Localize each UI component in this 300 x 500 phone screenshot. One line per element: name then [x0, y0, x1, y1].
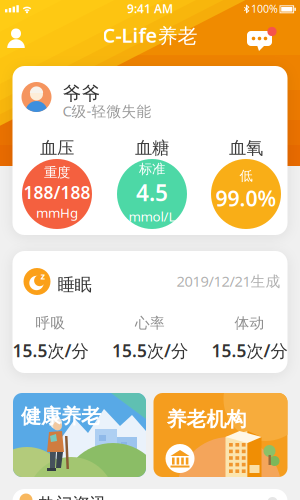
- staticText: 血压: [40, 137, 74, 159]
- staticText: 188/188: [23, 181, 90, 204]
- staticText: C-Life养老: [102, 22, 197, 48]
- staticText: 爷爷: [62, 82, 100, 105]
- staticText: 4.5: [136, 177, 168, 207]
- staticText: 健康养老: [21, 404, 101, 429]
- button[interactable]: 养老机构: [153, 393, 287, 477]
- staticText: 睡眠: [57, 274, 91, 295]
- staticText: 100%: [251, 2, 278, 16]
- staticText: 心率: [135, 314, 165, 332]
- button[interactable]: Messages: [247, 28, 277, 52]
- staticText: 血糖: [135, 137, 169, 159]
- staticText: 标准: [139, 161, 165, 177]
- staticText: 热门资讯: [38, 493, 106, 500]
- staticText: 低: [239, 168, 252, 184]
- staticText: 养老机构: [166, 407, 246, 432]
- staticText: C级-轻微失能: [62, 101, 151, 121]
- staticText: z: [40, 270, 45, 282]
- button[interactable]: 健康养老: [13, 393, 146, 477]
- staticText: 99.0%: [215, 184, 276, 212]
- staticText: 15.5次/分: [112, 339, 188, 362]
- button[interactable]: Profile: [7, 28, 25, 48]
- staticText: 15.5次/分: [12, 339, 88, 362]
- staticText: 2019/12/21生成: [176, 271, 280, 291]
- staticText: 呼吸: [35, 314, 65, 332]
- button[interactable]: 热门资讯: [12, 489, 287, 500]
- staticText: mmHg: [36, 204, 78, 221]
- staticText: mmol/L: [128, 207, 175, 225]
- staticText: 体动: [234, 314, 264, 332]
- staticText: 15.5次/分: [211, 339, 287, 362]
- staticText: 血氧: [229, 137, 263, 159]
- staticText: 重度: [44, 164, 70, 181]
- staticText: 9:41 AM: [127, 0, 173, 16]
